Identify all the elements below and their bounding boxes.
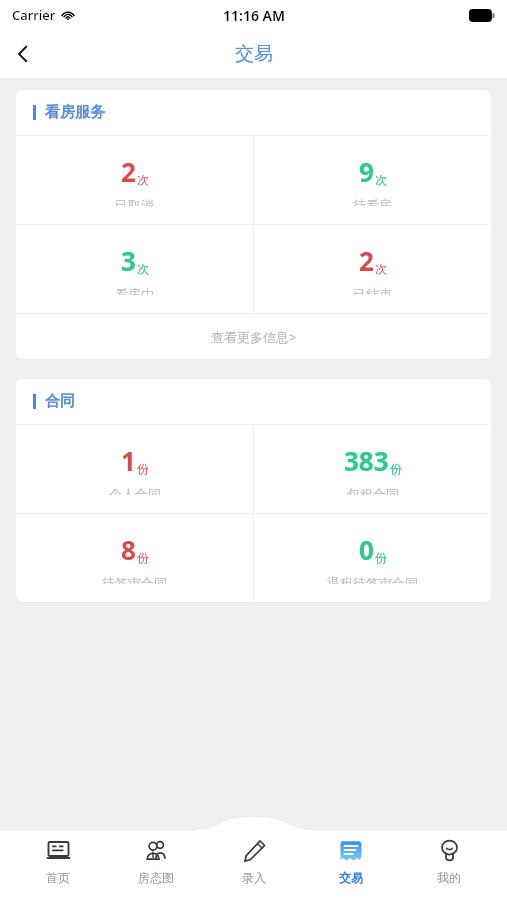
staticText: 录入 [242,870,266,885]
staticText: 次 [375,172,387,187]
staticText: 我的 [437,870,461,885]
button[interactable]: 383 [254,425,491,513]
button[interactable]: 我的 [409,836,489,887]
button[interactable]: 2 [16,136,253,224]
staticText: 查看更多信息> [211,328,297,346]
staticText: 次 [137,172,149,187]
staticText: 8 [121,532,136,567]
staticText: 份 [375,550,387,565]
button[interactable]: 9 [254,136,491,224]
staticText: 待签审合同 [102,575,167,584]
button[interactable]: 录入 [214,836,294,887]
staticText: 首页 [46,870,70,885]
button[interactable]: 3 [16,225,253,313]
staticText: 退租待签审合同 [327,575,418,584]
staticText: 份 [137,550,149,565]
button[interactable]: 1 [16,425,253,513]
staticText: 包租合同 [347,486,399,495]
staticText: 份 [137,461,149,476]
staticText: 待看房 [353,197,392,206]
staticText: 房态图 [138,870,174,885]
button[interactable]: 2 [254,225,491,313]
staticText: 交易 [235,42,273,66]
button[interactable]: Back [0,31,46,77]
staticText: 次 [375,261,387,276]
button[interactable]: 查看更多信息> [16,314,491,359]
staticText: Carrier [12,6,56,24]
button[interactable]: 8 [16,514,253,602]
staticText: 看房服务 [45,103,105,122]
staticText: 0 [359,532,374,567]
staticText: 9 [359,154,374,189]
staticText: 383 [344,443,389,478]
staticText: 11:16 AM [223,6,285,25]
staticText: 3 [121,243,136,278]
button[interactable]: 交易 [311,836,391,887]
staticText: 交易 [339,870,363,885]
button[interactable]: 房态图 [116,836,196,887]
staticText: 看房中 [115,286,154,295]
staticText: 1 [121,443,136,478]
staticText: 合同 [45,392,75,411]
staticText: 份 [390,461,402,476]
staticText: 2 [359,243,374,278]
staticText: 已取消 [115,197,154,206]
staticText: 2 [121,154,136,189]
staticText: 已结束 [353,286,392,295]
button[interactable]: 0 [254,514,491,602]
button[interactable]: 首页 [18,836,98,887]
staticText: 次 [137,261,149,276]
staticText: 个人合同 [109,486,161,495]
